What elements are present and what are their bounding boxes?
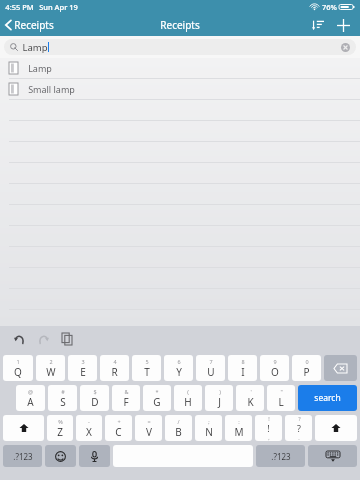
button[interactable]: ' bbox=[236, 385, 264, 411]
staticText: ) bbox=[219, 388, 221, 395]
staticText: I bbox=[241, 365, 245, 379]
button[interactable]: Redo bbox=[34, 330, 52, 348]
button[interactable]: & bbox=[112, 385, 140, 411]
button[interactable]: search bbox=[298, 385, 357, 411]
staticText: 3 bbox=[81, 358, 85, 365]
button[interactable]: 8 bbox=[228, 355, 257, 381]
button[interactable]: : bbox=[225, 415, 252, 441]
button[interactable]: ; bbox=[195, 415, 222, 441]
button[interactable]: 4 bbox=[100, 355, 129, 381]
button[interactable]: .?123 bbox=[3, 445, 42, 467]
staticText: C bbox=[115, 425, 122, 439]
staticText: Z bbox=[57, 425, 63, 439]
staticText: 6 bbox=[177, 358, 181, 365]
button[interactable]: 1 bbox=[3, 355, 33, 381]
button[interactable]: / bbox=[165, 415, 192, 441]
staticText: / bbox=[177, 418, 180, 425]
button[interactable]: % bbox=[47, 415, 73, 441]
staticText: Sun Apr 19 bbox=[39, 2, 78, 12]
staticText: ? bbox=[298, 415, 301, 422]
button[interactable]: @ bbox=[16, 385, 45, 411]
button[interactable]: Add bbox=[330, 14, 356, 36]
staticText: & bbox=[124, 388, 129, 395]
staticText: 76% bbox=[322, 2, 337, 12]
staticText: + bbox=[117, 418, 121, 425]
button[interactable]: Shift bbox=[3, 415, 44, 441]
staticText: 4:55 PM bbox=[5, 2, 34, 12]
staticText: B bbox=[175, 425, 182, 439]
button[interactable]: ? bbox=[285, 415, 312, 441]
button[interactable]: 6 bbox=[164, 355, 193, 381]
button[interactable]: " bbox=[267, 385, 295, 411]
button[interactable]: Clear text bbox=[341, 43, 350, 52]
button[interactable]: ) bbox=[205, 385, 233, 411]
staticText: search bbox=[314, 392, 341, 404]
staticText: H bbox=[184, 395, 192, 409]
button[interactable]: ( bbox=[174, 385, 202, 411]
staticText: , bbox=[268, 434, 270, 441]
staticText: K bbox=[247, 395, 254, 409]
staticText: 7 bbox=[209, 358, 213, 365]
staticText: Receipts bbox=[160, 18, 200, 32]
button[interactable]: Small lamp bbox=[0, 79, 360, 100]
button[interactable]: + bbox=[105, 415, 132, 441]
button[interactable]: $ bbox=[80, 385, 109, 411]
staticText: F bbox=[123, 395, 129, 409]
staticText: Q bbox=[14, 365, 22, 379]
button[interactable]: Hide keyboard bbox=[308, 445, 357, 467]
button[interactable]: Undo bbox=[10, 330, 28, 348]
staticText: : bbox=[238, 418, 240, 425]
button[interactable]: - bbox=[76, 415, 102, 441]
button[interactable]: ! bbox=[255, 415, 282, 441]
staticText: N bbox=[205, 425, 213, 439]
staticText: A bbox=[27, 395, 34, 409]
button[interactable]: 9 bbox=[260, 355, 289, 381]
button[interactable]: Paste bbox=[58, 330, 76, 348]
staticText: . bbox=[298, 434, 300, 441]
button[interactable]: # bbox=[48, 385, 77, 411]
button[interactable]: = bbox=[135, 415, 162, 441]
staticText: .?123 bbox=[13, 451, 33, 462]
staticText: Small lamp bbox=[28, 83, 75, 95]
staticText: ! bbox=[268, 415, 270, 422]
staticText: O bbox=[271, 365, 279, 379]
staticText: Y bbox=[176, 365, 182, 379]
staticText: X bbox=[86, 425, 92, 439]
staticText: R bbox=[111, 365, 118, 379]
staticText: E bbox=[80, 365, 86, 379]
button[interactable]: Dictation bbox=[79, 445, 110, 467]
staticText: 4 bbox=[113, 358, 117, 365]
staticText: * bbox=[155, 388, 159, 395]
button[interactable]: Shift bbox=[315, 415, 357, 441]
staticText: 1 bbox=[16, 358, 20, 365]
staticText: S bbox=[60, 395, 66, 409]
staticText: Receipts bbox=[14, 18, 54, 32]
staticText: ' bbox=[250, 388, 252, 395]
button[interactable]: 3 bbox=[68, 355, 97, 381]
button[interactable]: 2 bbox=[36, 355, 65, 381]
button[interactable]: Emoji bbox=[45, 445, 76, 467]
staticText: L bbox=[278, 395, 284, 409]
button[interactable]: * bbox=[143, 385, 171, 411]
staticText: G bbox=[153, 395, 161, 409]
button[interactable]: Backspace bbox=[324, 355, 357, 381]
staticText: D bbox=[91, 395, 99, 409]
button[interactable]: 7 bbox=[196, 355, 225, 381]
staticText: 2 bbox=[49, 358, 53, 365]
button[interactable]: 0 bbox=[292, 355, 321, 381]
staticText: ! bbox=[267, 422, 270, 434]
button[interactable]: .?123 bbox=[256, 445, 305, 467]
button[interactable]: Receipts bbox=[0, 15, 62, 35]
button[interactable]: 5 bbox=[132, 355, 161, 381]
staticText: Lamp bbox=[28, 62, 52, 74]
button[interactable]: Lamp bbox=[4, 39, 356, 55]
button[interactable]: Sort bbox=[306, 14, 330, 36]
staticText: Lamp bbox=[22, 41, 48, 54]
staticText: " bbox=[280, 388, 283, 395]
staticText: .?123 bbox=[271, 451, 291, 462]
staticText: @ bbox=[28, 388, 33, 395]
staticText: = bbox=[147, 418, 151, 425]
button[interactable]: Lamp bbox=[0, 58, 360, 79]
staticText: 8 bbox=[241, 358, 245, 365]
